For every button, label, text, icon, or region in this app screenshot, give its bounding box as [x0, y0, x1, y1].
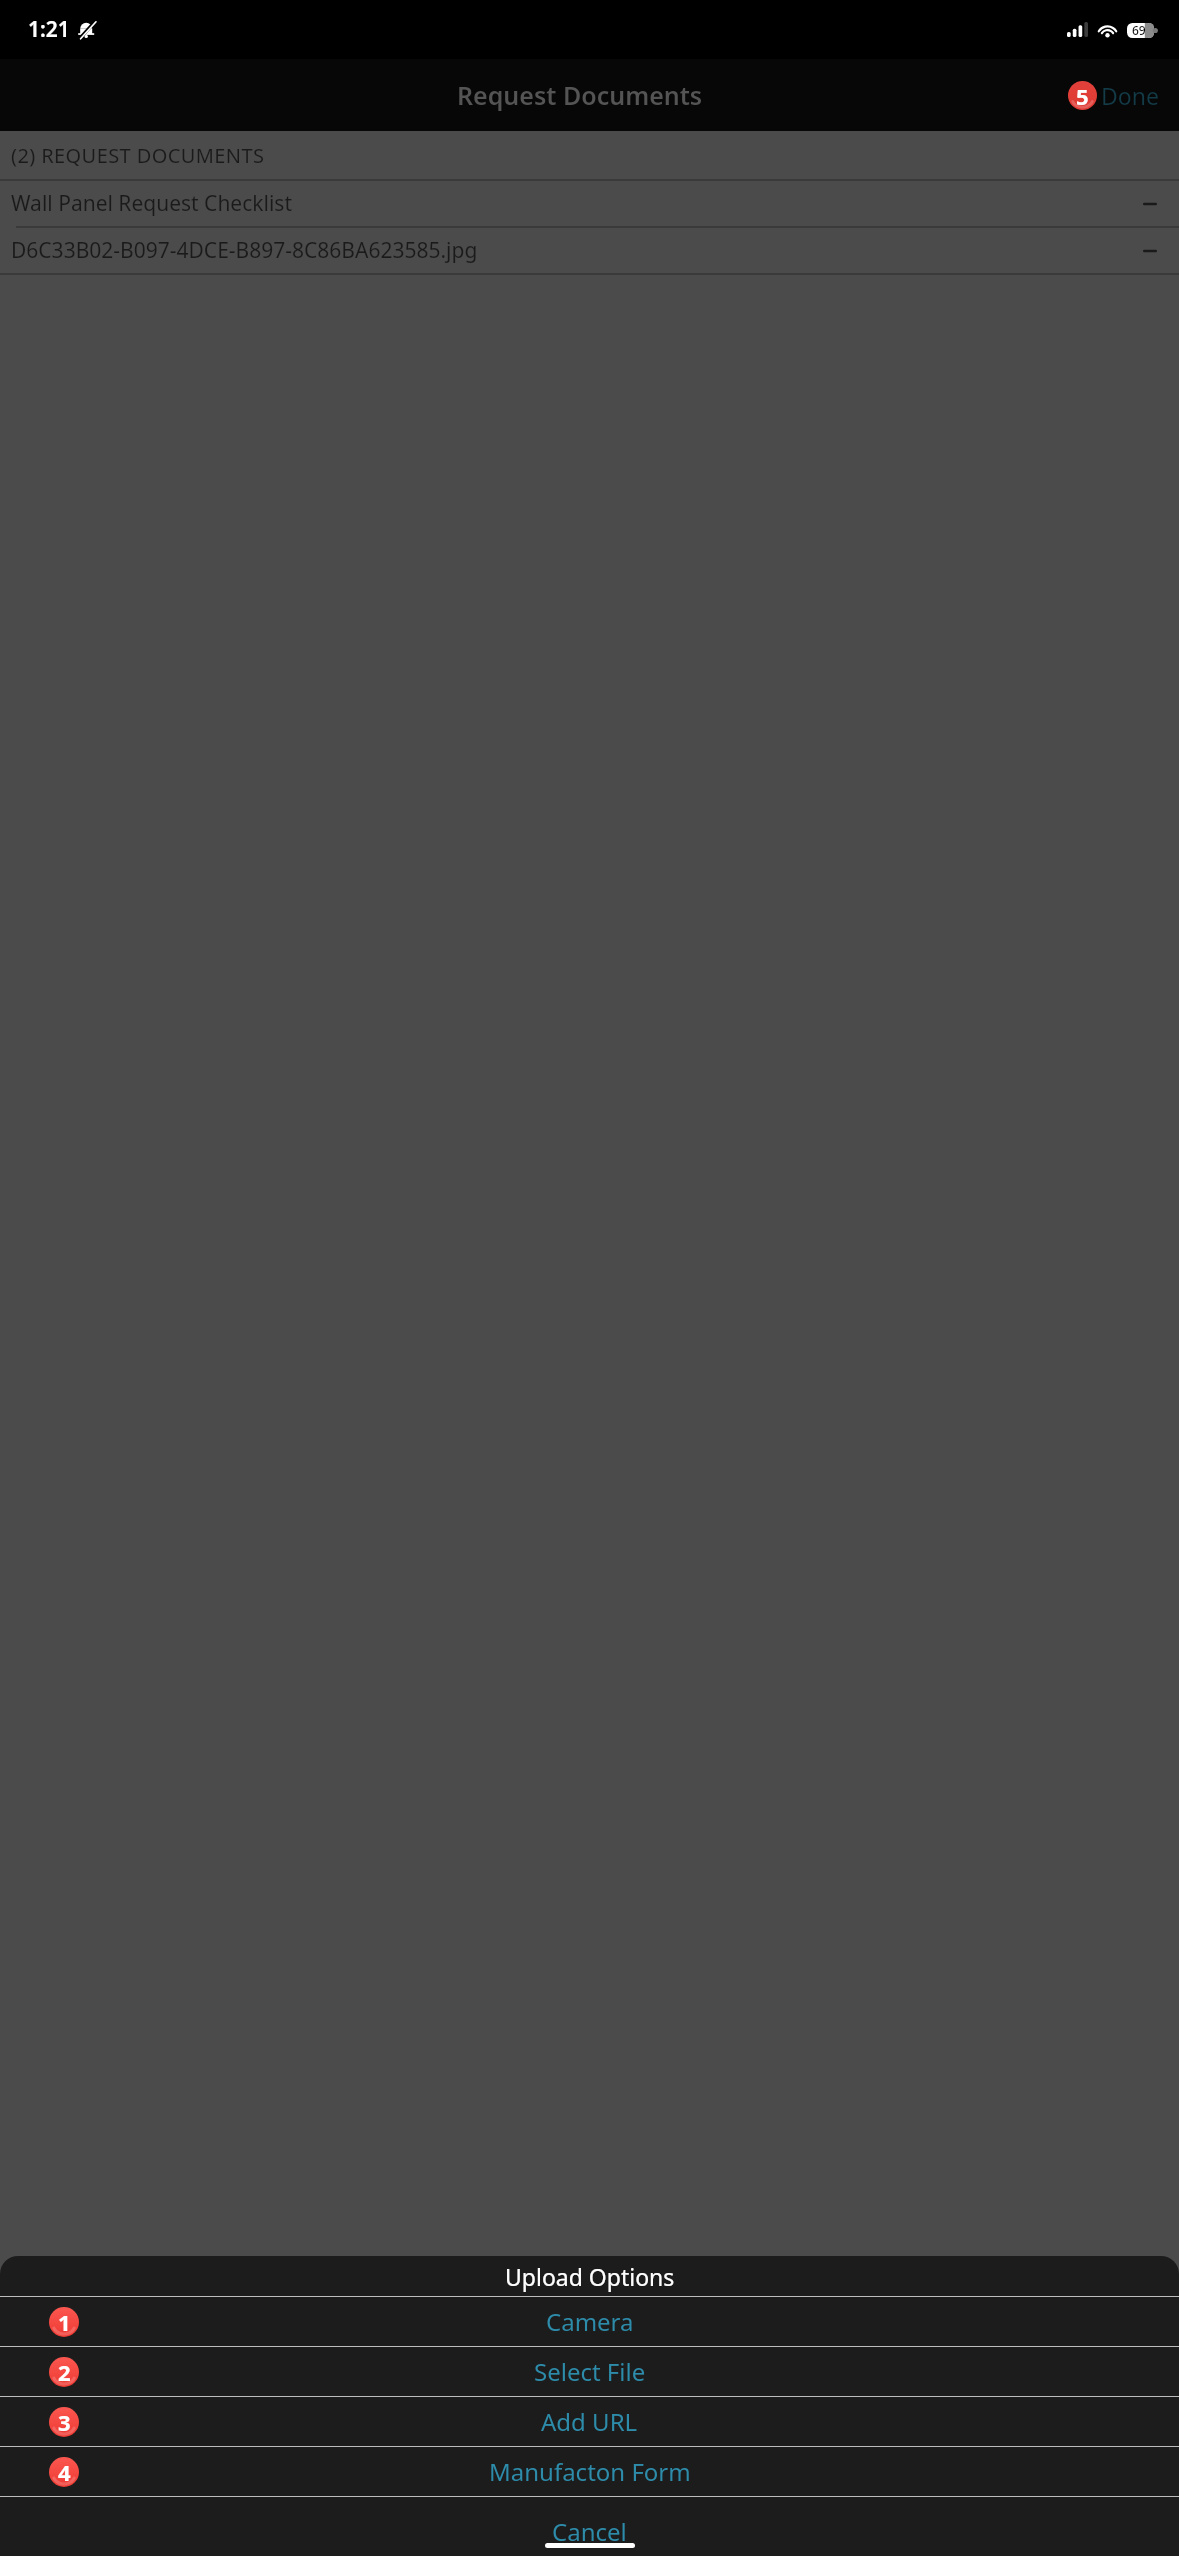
other: Remove: [1143, 197, 1157, 211]
staticText: Select File: [534, 2355, 646, 2388]
staticText: D6C33B02-B097-4DCE-B897-8C86BA623585.jpg: [11, 236, 478, 265]
staticText: Done: [1101, 80, 1159, 111]
staticText: 1: [58, 2307, 71, 2337]
staticText: Manufacton Form: [489, 2455, 691, 2488]
staticText: Camera: [546, 2305, 634, 2338]
staticText: 5: [1076, 81, 1089, 110]
button[interactable]: 4: [0, 2447, 1179, 2496]
staticText: Wall Panel Request Checklist: [11, 189, 292, 218]
other: Remove: [1143, 244, 1157, 258]
staticText: (2) REQUEST DOCUMENTS: [11, 142, 265, 169]
staticText: 2: [58, 2357, 71, 2387]
button[interactable]: 1: [0, 2297, 1179, 2346]
staticText: 69: [1132, 22, 1146, 38]
staticText: Add URL: [541, 2405, 638, 2438]
staticText: 4: [58, 2457, 71, 2487]
button[interactable]: Cancel: [0, 2497, 1179, 2556]
button[interactable]: 3: [0, 2397, 1179, 2446]
staticText: Cancel: [552, 2515, 627, 2548]
other: Silent mode: [77, 20, 97, 40]
button[interactable]: 2: [0, 2347, 1179, 2396]
staticText: 3: [58, 2407, 71, 2437]
button[interactable]: Wall Panel Request Checklist: [0, 181, 1179, 226]
staticText: Upload Options: [505, 2261, 675, 2292]
button[interactable]: 5: [1068, 80, 1159, 111]
button[interactable]: D6C33B02-B097-4DCE-B897-8C86BA623585.jpg: [0, 228, 1179, 273]
staticText: 1:21: [28, 15, 70, 44]
staticText: Request Documents: [457, 78, 703, 112]
